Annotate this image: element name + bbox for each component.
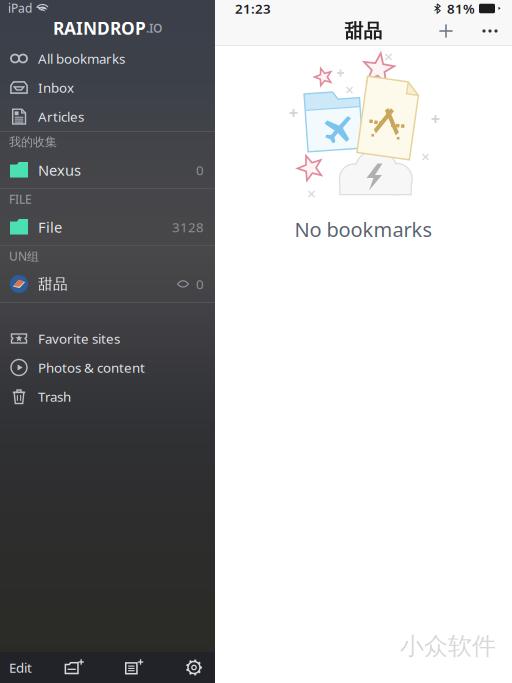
staticText: Inbox bbox=[38, 79, 74, 96]
button[interactable]: Articles bbox=[0, 102, 215, 131]
staticText: 甜品 bbox=[38, 275, 68, 293]
staticText: 甜品 bbox=[344, 19, 382, 42]
button[interactable]: Add bbox=[431, 17, 461, 45]
staticText: Favorite sites bbox=[38, 330, 120, 347]
staticText: Trash bbox=[38, 388, 71, 405]
button[interactable]: Edit bbox=[0, 652, 32, 683]
staticText: 0 bbox=[196, 161, 204, 179]
staticText: RAINDROP bbox=[53, 16, 146, 39]
staticText: .IO bbox=[146, 20, 162, 36]
staticText: 21:23 bbox=[235, 0, 271, 17]
button[interactable]: Inbox bbox=[0, 73, 215, 102]
staticText: iPad bbox=[8, 0, 32, 16]
button[interactable]: Favorite sites bbox=[0, 324, 215, 353]
button[interactable]: More bbox=[475, 17, 505, 45]
staticText: 3128 bbox=[172, 218, 204, 236]
button[interactable]: File bbox=[0, 209, 215, 245]
button[interactable]: All bookmarks bbox=[0, 44, 215, 73]
button[interactable]: New bookmark bbox=[117, 652, 151, 683]
staticText: FILE bbox=[9, 191, 32, 207]
staticText: No bookmarks bbox=[294, 216, 432, 243]
staticText: UN组 bbox=[9, 248, 39, 264]
button[interactable]: Photos & content bbox=[0, 353, 215, 382]
button[interactable]: 甜品 bbox=[0, 266, 215, 302]
button[interactable]: Trash bbox=[0, 382, 215, 411]
button[interactable]: Nexus bbox=[0, 152, 215, 188]
button[interactable]: Settings bbox=[177, 652, 211, 683]
staticText: 小众软件 bbox=[400, 631, 496, 661]
staticText: All bookmarks bbox=[38, 50, 125, 67]
button[interactable]: New collection bbox=[58, 652, 92, 683]
staticText: Photos & content bbox=[38, 359, 145, 376]
staticText: Nexus bbox=[38, 160, 81, 180]
staticText: 0 bbox=[196, 275, 204, 293]
staticText: File bbox=[38, 217, 62, 237]
staticText: 81% bbox=[447, 0, 475, 17]
staticText: Articles bbox=[38, 108, 84, 125]
staticText: Edit bbox=[9, 659, 32, 676]
staticText: 我的收集 bbox=[9, 135, 57, 149]
